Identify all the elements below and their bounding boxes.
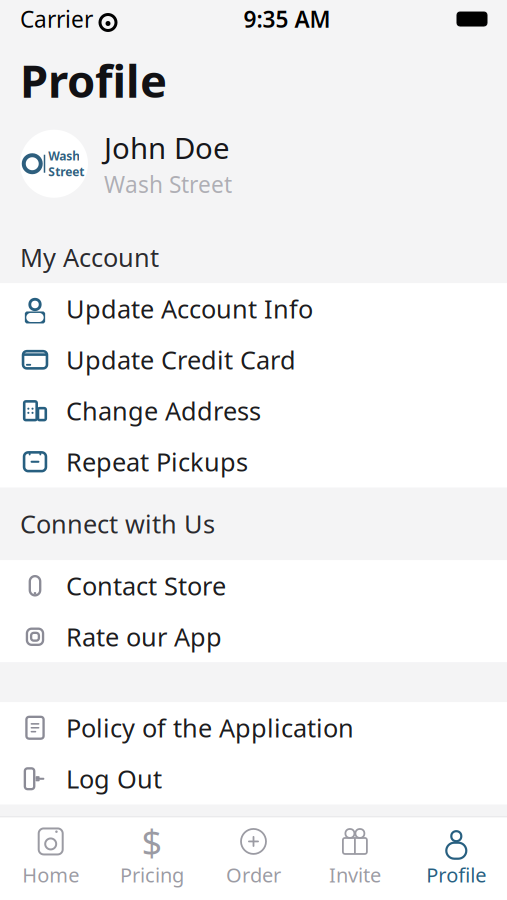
button[interactable]: Rate our App [0,611,507,662]
staticText: $ [142,817,163,865]
staticText: Wash [48,148,80,164]
button[interactable]: Home [0,817,101,900]
button[interactable]: Change Address [0,385,507,436]
staticText: Invite [329,861,381,888]
staticText: Profile [426,861,486,888]
staticText: Rate our App [66,620,222,653]
button[interactable]: $ [101,817,203,900]
button[interactable]: Order [203,817,304,900]
staticText: Update Account Info [66,292,313,325]
button[interactable]: Contact Store [0,560,507,611]
staticText: Pricing [120,861,184,888]
button[interactable]: Update Account Info [0,283,507,334]
staticText: Wash Street [104,169,232,199]
staticText: Profile [20,50,167,110]
staticText: Order [226,861,281,888]
staticText: Contact Store [66,569,226,602]
staticText: My Account [20,240,159,274]
button[interactable]: Update Credit Card [0,334,507,385]
staticText: Update Credit Card [66,343,296,376]
staticText: Street [48,164,84,180]
button[interactable]: Profile [406,817,507,900]
staticText: Policy of the Application [66,711,354,744]
button[interactable]: Repeat Pickups [0,436,507,487]
button[interactable]: Policy of the Application [0,702,507,753]
staticText: Connect with Us [20,507,215,540]
staticText: 9:35 AM [243,4,330,34]
staticText: Home [22,861,79,888]
staticText: Carrier [20,4,93,34]
staticText: John Doe [104,128,230,167]
staticText: Log Out [66,762,162,795]
button[interactable]: Log Out [0,753,507,804]
staticText: Repeat Pickups [66,445,248,478]
button[interactable]: Invite [304,817,406,900]
staticText: Change Address [66,394,261,427]
